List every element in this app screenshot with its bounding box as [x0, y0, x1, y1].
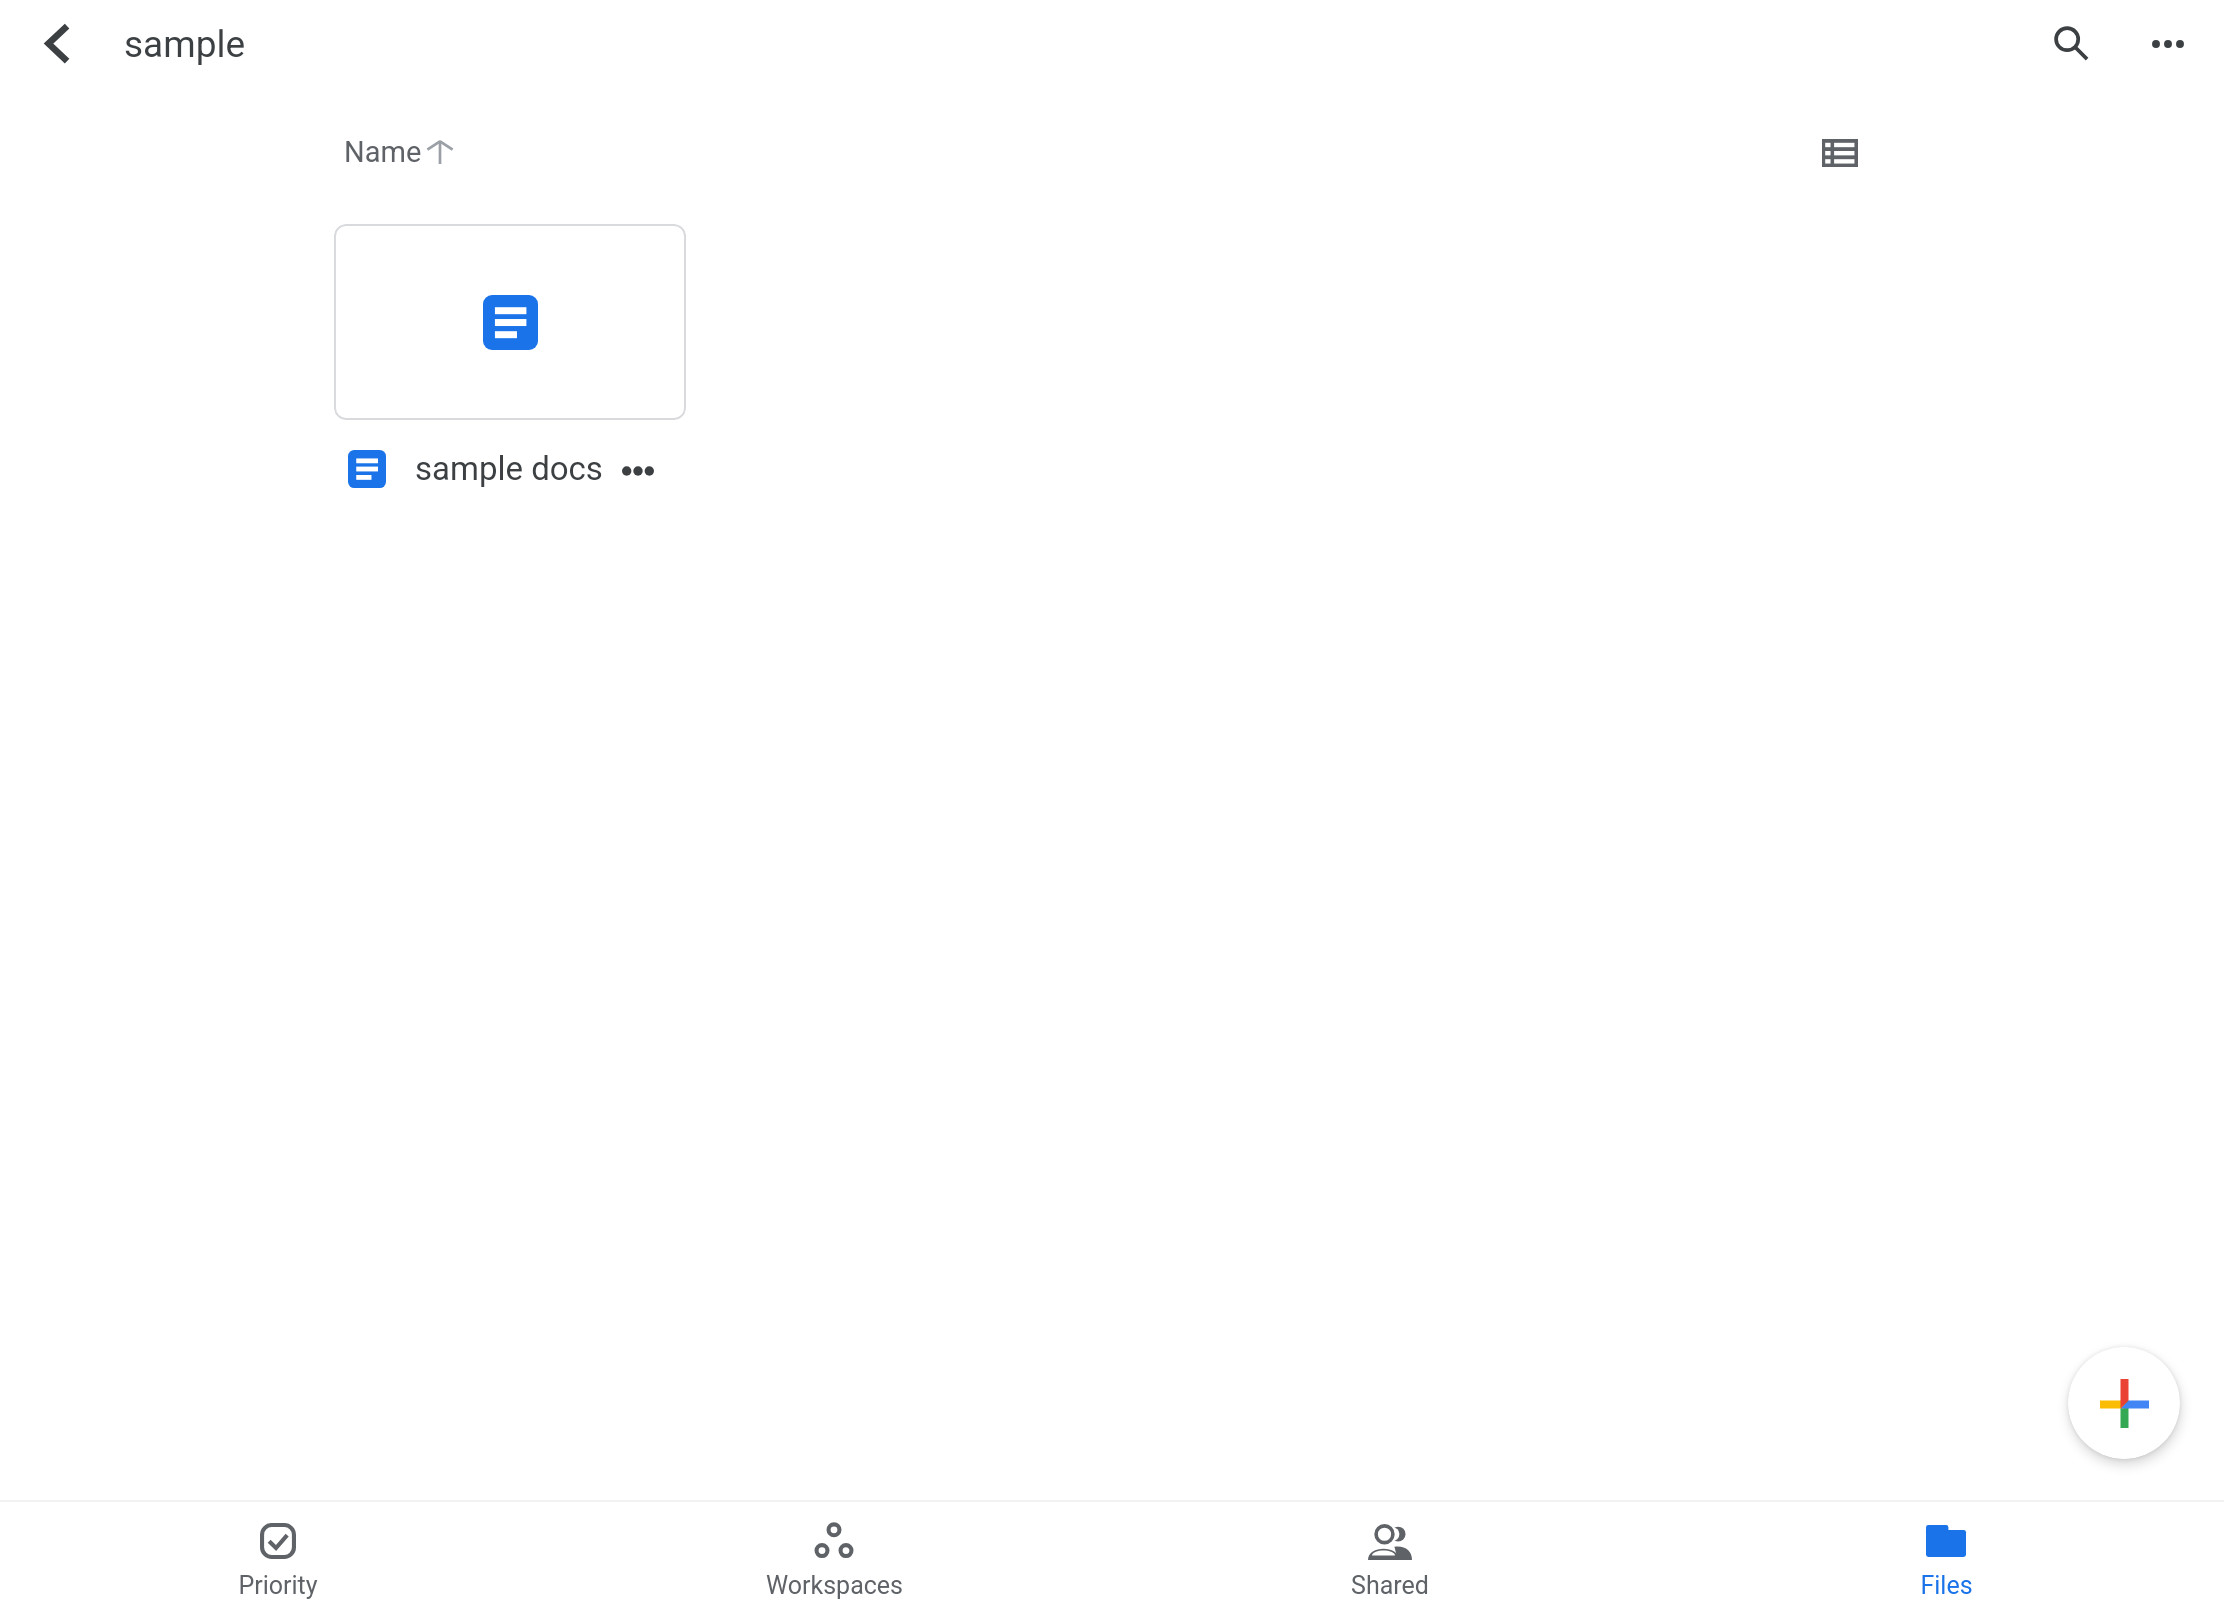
staticText: sample docs: [415, 449, 603, 488]
button[interactable]: Search: [2034, 6, 2104, 76]
staticText: Workspaces: [766, 1571, 903, 1600]
staticText: Priority: [238, 1571, 318, 1600]
button[interactable]: Workspaces: [556, 1502, 1112, 1615]
staticText: Name: [344, 135, 422, 169]
staticText: Files: [1920, 1571, 1973, 1600]
button[interactable]: sample docs: [342, 449, 654, 488]
button[interactable]: List view: [1806, 119, 1874, 187]
button[interactable]: New: [2068, 1347, 2180, 1459]
staticText: sample: [124, 23, 246, 66]
button[interactable]: Priority: [0, 1502, 556, 1615]
button[interactable]: Name: [344, 135, 456, 169]
button[interactable]: Files: [1668, 1502, 2224, 1615]
staticText: Shared: [1351, 1571, 1429, 1600]
button[interactable]: Shared: [1112, 1502, 1668, 1615]
button[interactable]: Back: [22, 9, 90, 77]
button[interactable]: More options: [2133, 9, 2203, 79]
button[interactable]: sample docs preview: [334, 224, 686, 420]
